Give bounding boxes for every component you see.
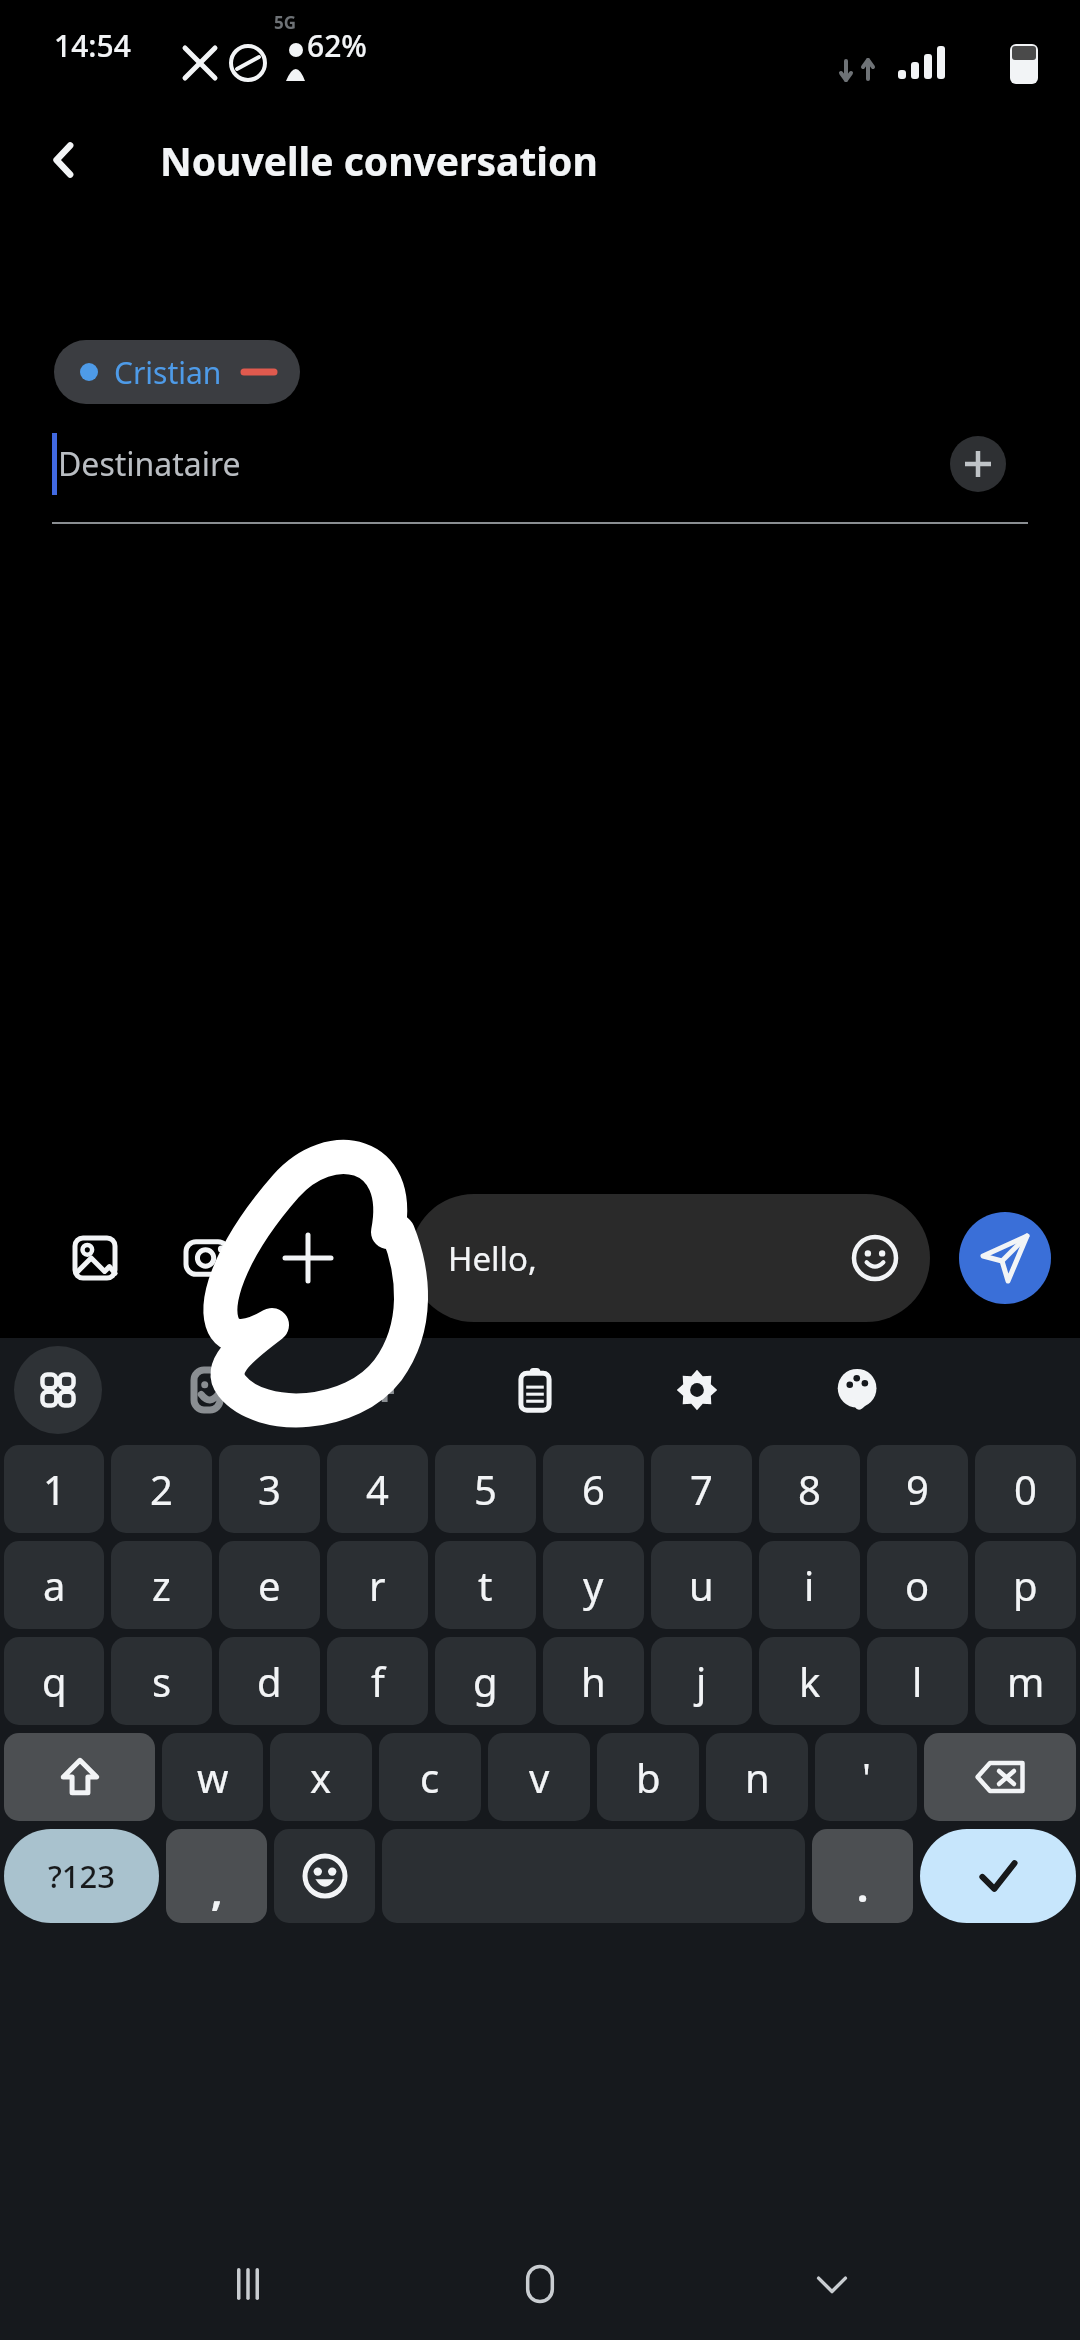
staticText: c	[420, 1750, 440, 1804]
button[interactable]: Emoji keyboard	[274, 1829, 375, 1923]
button[interactable]: s	[111, 1637, 212, 1725]
button[interactable]: i	[759, 1541, 860, 1629]
staticText: a	[43, 1558, 66, 1612]
staticText: j	[696, 1654, 707, 1708]
staticText: w	[197, 1750, 229, 1804]
staticText: Nouvelle conversation	[160, 134, 598, 187]
staticText: .	[857, 1859, 869, 1913]
staticText: 7	[690, 1462, 713, 1516]
button[interactable]: 0	[975, 1445, 1076, 1533]
staticText: i	[804, 1558, 815, 1612]
staticText: x	[310, 1750, 332, 1804]
button[interactable]: More options	[268, 1218, 348, 1298]
button[interactable]: z	[111, 1541, 212, 1629]
button[interactable]: 9	[867, 1445, 968, 1533]
button[interactable]: Theme	[818, 1350, 898, 1430]
button[interactable]: Settings	[657, 1350, 737, 1430]
staticText: 62%	[307, 25, 367, 66]
staticText: f	[371, 1654, 385, 1708]
button[interactable]: .	[812, 1829, 913, 1923]
staticText: '	[862, 1750, 871, 1804]
staticText: m	[1007, 1654, 1045, 1708]
button[interactable]: 8	[759, 1445, 860, 1533]
staticText: h	[581, 1654, 606, 1708]
button[interactable]: Cristian	[54, 340, 300, 404]
button[interactable]: w	[162, 1733, 263, 1821]
button[interactable]: Clipboard	[495, 1350, 575, 1430]
button[interactable]: a	[4, 1541, 104, 1629]
staticText: 3	[258, 1462, 281, 1516]
button[interactable]: x	[270, 1733, 372, 1821]
staticText: r	[369, 1558, 386, 1612]
button[interactable]: f	[327, 1637, 428, 1725]
button[interactable]: e	[219, 1541, 320, 1629]
button[interactable]: Home	[492, 2236, 588, 2332]
staticText: y	[583, 1558, 604, 1612]
button[interactable]: r	[327, 1541, 428, 1629]
button[interactable]: Back	[24, 120, 104, 200]
button[interactable]: n	[706, 1733, 808, 1821]
button[interactable]: 3	[219, 1445, 320, 1533]
button[interactable]: p	[975, 1541, 1076, 1629]
button[interactable]: Hide keyboard	[784, 2236, 880, 2332]
staticText: Destinataire	[58, 442, 241, 486]
button[interactable]: 7	[651, 1445, 752, 1533]
staticText: ?123	[48, 1855, 116, 1897]
staticText: n	[745, 1750, 770, 1804]
staticText: Hello,	[448, 1236, 537, 1281]
button[interactable]: c	[379, 1733, 481, 1821]
button[interactable]: u	[651, 1541, 752, 1629]
button[interactable]: g	[435, 1637, 536, 1725]
staticText: 0	[1014, 1462, 1037, 1516]
button[interactable]: d	[219, 1637, 320, 1725]
staticText: b	[636, 1750, 661, 1804]
staticText: 4	[366, 1462, 389, 1516]
staticText: o	[905, 1558, 930, 1612]
button[interactable]: '	[815, 1733, 917, 1821]
button[interactable]: q	[4, 1637, 104, 1725]
button[interactable]: Gallery	[55, 1218, 135, 1298]
staticText: 5G	[274, 11, 297, 34]
button[interactable]: j	[651, 1637, 752, 1725]
button[interactable]: b	[597, 1733, 699, 1821]
button[interactable]: l	[867, 1637, 968, 1725]
button[interactable]: Stickers	[170, 1350, 250, 1430]
staticText: ,	[211, 1863, 223, 1917]
button[interactable]: Recents	[200, 2236, 296, 2332]
button[interactable]: Backspace	[924, 1733, 1076, 1821]
staticText: p	[1013, 1558, 1038, 1612]
button[interactable]: Enter	[920, 1829, 1076, 1923]
staticText: z	[152, 1558, 171, 1612]
button[interactable]: Hello,	[410, 1194, 930, 1322]
button[interactable]: h	[543, 1637, 644, 1725]
button[interactable]: Camera	[167, 1218, 247, 1298]
button[interactable]: Apps	[14, 1346, 102, 1434]
button[interactable]: Add recipient	[950, 436, 1006, 492]
button[interactable]: Send	[959, 1212, 1051, 1304]
button[interactable]: Shift	[4, 1733, 155, 1821]
staticText: v	[529, 1750, 550, 1804]
button[interactable]: y	[543, 1541, 644, 1629]
button[interactable]: o	[867, 1541, 968, 1629]
button[interactable]: k	[759, 1637, 860, 1725]
button[interactable]: 4	[327, 1445, 428, 1533]
button[interactable]: Emoji	[846, 1229, 904, 1287]
staticText: 5	[474, 1462, 497, 1516]
staticText: s	[152, 1654, 172, 1708]
button[interactable]: 2	[111, 1445, 212, 1533]
staticText: t	[478, 1558, 493, 1612]
button[interactable]: 1	[4, 1445, 104, 1533]
button[interactable]: 6	[543, 1445, 644, 1533]
button[interactable]: 5	[435, 1445, 536, 1533]
button[interactable]: v	[488, 1733, 590, 1821]
button[interactable]: t	[435, 1541, 536, 1629]
button[interactable]: ,	[166, 1829, 267, 1923]
button[interactable]: ?123	[4, 1829, 159, 1923]
staticText: u	[689, 1558, 714, 1612]
button[interactable]: m	[975, 1637, 1076, 1725]
staticText: 9	[906, 1462, 929, 1516]
staticText: 6	[582, 1462, 605, 1516]
staticText: e	[258, 1558, 281, 1612]
staticText: 2	[150, 1462, 173, 1516]
